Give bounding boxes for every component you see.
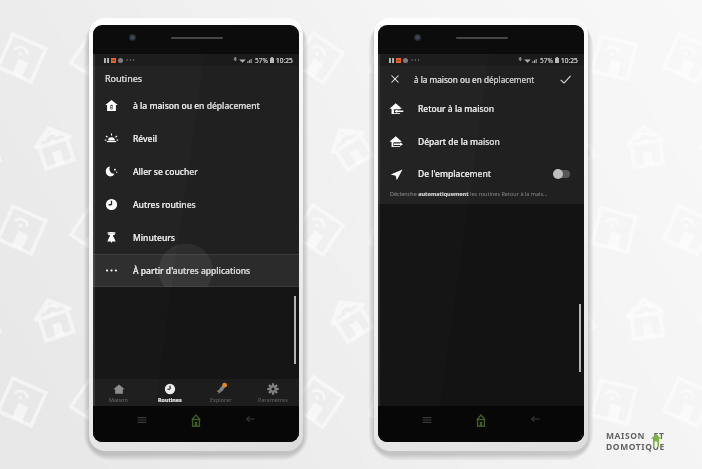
button[interactable]: Maison xyxy=(93,379,144,406)
staticText: Minuteurs xyxy=(133,232,175,244)
button[interactable]: Départ de la maison xyxy=(378,125,584,158)
button[interactable]: Close xyxy=(388,72,402,86)
staticText: 57% xyxy=(540,56,553,65)
staticText: Routines xyxy=(158,396,182,403)
staticText: 57% xyxy=(255,56,268,65)
button[interactable]: Routines xyxy=(144,379,195,406)
staticText: Routines xyxy=(105,72,143,84)
button[interactable]: Menu xyxy=(136,414,148,426)
staticText: Paramètres xyxy=(258,396,288,403)
button[interactable]: Aller se coucher xyxy=(93,155,299,188)
staticText: Explorer xyxy=(210,396,232,403)
button[interactable]: Confirm xyxy=(558,72,573,87)
button[interactable]: Menu xyxy=(421,414,433,426)
staticText: À partir d'autres applications xyxy=(133,265,251,277)
button[interactable]: Réveil xyxy=(93,122,299,155)
button[interactable]: De l'emplacement xyxy=(378,158,584,190)
staticText: Maison xyxy=(109,396,128,403)
button[interactable]: Minuteurs xyxy=(93,221,299,254)
staticText: DOMOTIQUE xyxy=(606,441,665,452)
button[interactable]: à la maison ou en déplacement xyxy=(93,89,299,122)
staticText: Autres routines xyxy=(133,199,196,211)
staticText: MAISON ET xyxy=(606,430,665,442)
staticText: Aller se coucher xyxy=(133,166,198,178)
button[interactable]: À partir d'autres applications xyxy=(93,254,299,287)
button[interactable]: Autres routines xyxy=(93,188,299,221)
staticText: Départ de la maison xyxy=(418,136,500,148)
staticText: à la maison ou en déplacement xyxy=(133,100,260,112)
staticText: à la maison ou en déplacement xyxy=(414,74,535,85)
staticText: De l'emplacement xyxy=(418,168,492,180)
staticText: 10:25 xyxy=(561,56,578,65)
button[interactable]: Paramètres xyxy=(247,379,299,406)
button[interactable]: Home xyxy=(476,414,486,427)
staticText: 10:25 xyxy=(276,56,293,65)
button[interactable]: Explorer xyxy=(195,379,247,406)
button[interactable]: Back xyxy=(244,414,256,426)
button[interactable]: Back xyxy=(529,414,541,426)
staticText: Déclenche automatiquement les routines R… xyxy=(390,190,548,197)
button[interactable]: Retour à la maison xyxy=(378,92,584,125)
button[interactable]: Home xyxy=(191,414,201,427)
staticText: Réveil xyxy=(133,133,158,145)
staticText: Retour à la maison xyxy=(418,103,495,115)
